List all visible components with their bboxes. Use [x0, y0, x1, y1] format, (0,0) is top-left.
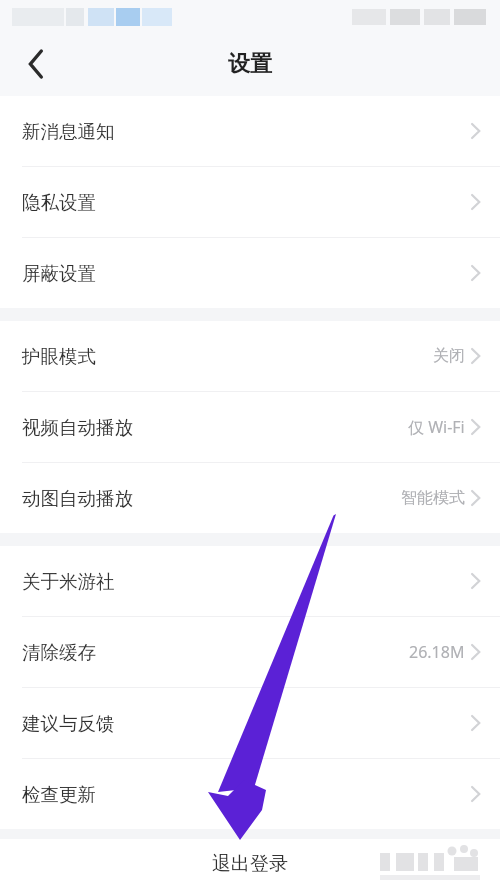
staticText: 智能模式 [401, 488, 465, 508]
button[interactable]: 屏蔽设置 [0, 238, 500, 308]
staticText: 检查更新 [22, 783, 96, 806]
staticText: 屏蔽设置 [22, 262, 96, 285]
button[interactable]: 清除缓存 [0, 617, 500, 687]
button[interactable]: 建议与反馈 [0, 688, 500, 758]
button[interactable]: 护眼模式 [0, 321, 500, 391]
staticText: 仅 Wi-Fi [408, 416, 465, 438]
staticText: 动图自动播放 [22, 487, 133, 510]
staticText: 关于米游社 [22, 570, 115, 593]
staticText: 26.18M [409, 641, 465, 663]
staticText: 新消息通知 [22, 120, 115, 143]
button[interactable]: 退出登录 [0, 839, 500, 889]
staticText: 清除缓存 [22, 641, 96, 664]
staticText: 护眼模式 [22, 345, 96, 368]
staticText: 视频自动播放 [22, 416, 133, 439]
button[interactable]: 关于米游社 [0, 546, 500, 616]
button[interactable]: Back [14, 42, 58, 86]
button[interactable]: 新消息通知 [0, 96, 500, 166]
button[interactable]: 隐私设置 [0, 167, 500, 237]
staticText: 关闭 [433, 346, 465, 366]
staticText: 隐私设置 [22, 191, 96, 214]
staticText: 建议与反馈 [22, 712, 115, 735]
button[interactable]: 动图自动播放 [0, 463, 500, 533]
staticText: 设置 [228, 50, 272, 78]
staticText: 退出登录 [212, 852, 288, 876]
button[interactable]: 检查更新 [0, 759, 500, 829]
button[interactable]: 视频自动播放 [0, 392, 500, 462]
